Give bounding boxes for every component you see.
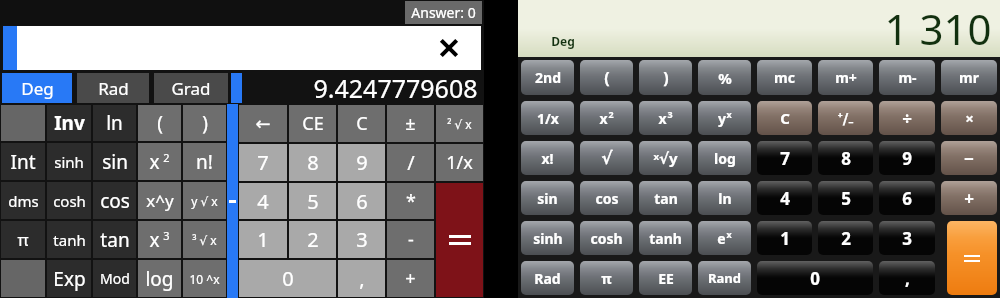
button[interactable]: 10 ^x bbox=[183, 260, 226, 297]
button[interactable]: , bbox=[879, 261, 935, 295]
button[interactable]: ± bbox=[387, 105, 434, 142]
button[interactable]: m- bbox=[879, 60, 935, 95]
button[interactable]: + bbox=[941, 181, 997, 215]
button[interactable]: - bbox=[387, 221, 434, 258]
button[interactable]: , bbox=[338, 260, 385, 297]
button[interactable]: 9 bbox=[879, 141, 935, 175]
button[interactable]: 7 bbox=[239, 144, 287, 181]
button[interactable]: EE bbox=[639, 261, 692, 295]
button[interactable]: log bbox=[698, 141, 751, 175]
button[interactable]: 8 bbox=[818, 141, 873, 175]
button[interactable]: x bbox=[138, 143, 181, 180]
button[interactable]: 9 bbox=[338, 144, 385, 181]
button[interactable]: sin bbox=[521, 181, 574, 215]
button[interactable]: cos bbox=[580, 181, 633, 215]
button[interactable]: Answer: 0 bbox=[411, 3, 476, 22]
button[interactable]: cos bbox=[93, 182, 136, 219]
button[interactable]: m+ bbox=[818, 60, 873, 95]
button[interactable]: ( bbox=[580, 60, 633, 95]
button[interactable]: + bbox=[387, 260, 434, 297]
button[interactable]: 6 bbox=[338, 183, 385, 219]
button[interactable]: log bbox=[138, 260, 181, 297]
button[interactable]: tanh bbox=[47, 221, 91, 258]
button[interactable]: Grad bbox=[154, 73, 228, 103]
button[interactable]: ÷ bbox=[879, 101, 935, 135]
button[interactable]: cosh bbox=[580, 221, 633, 255]
button[interactable]: 4 bbox=[757, 181, 812, 215]
staticText: 6 bbox=[902, 187, 912, 210]
button[interactable]: y √ x bbox=[183, 182, 226, 219]
button[interactable]: 2nd bbox=[521, 60, 574, 95]
button[interactable]: Inv bbox=[47, 105, 91, 141]
button[interactable]: n! bbox=[183, 143, 226, 180]
button[interactable]: Equals bbox=[436, 183, 483, 297]
button[interactable]: 5 bbox=[289, 183, 336, 219]
button[interactable]: − bbox=[941, 141, 997, 175]
button[interactable]: cosh bbox=[47, 182, 91, 219]
button[interactable]: dms bbox=[1, 182, 45, 219]
button[interactable]: 3 bbox=[879, 221, 935, 255]
button[interactable]: % bbox=[698, 60, 751, 95]
button[interactable]: sin bbox=[93, 143, 136, 180]
button[interactable]: x bbox=[580, 101, 633, 135]
button[interactable]: = bbox=[947, 221, 997, 295]
button[interactable]: 3 bbox=[338, 221, 385, 258]
button[interactable]: 1 bbox=[757, 221, 812, 255]
button[interactable]: × bbox=[941, 101, 997, 135]
button[interactable]: C bbox=[757, 101, 812, 135]
button[interactable]: tanh bbox=[639, 221, 692, 255]
button[interactable]: ) bbox=[639, 60, 692, 95]
button[interactable]: Clear input bbox=[433, 32, 465, 64]
button[interactable]: e bbox=[698, 221, 751, 255]
button[interactable]: sinh bbox=[521, 221, 574, 255]
button[interactable]: π bbox=[580, 261, 633, 295]
button[interactable]: Mod bbox=[93, 260, 136, 297]
button[interactable]: Exp bbox=[47, 260, 91, 297]
button[interactable]: 8 bbox=[289, 144, 336, 181]
button[interactable]: 4 bbox=[239, 183, 287, 219]
button[interactable]: ⁺∕₋ bbox=[818, 101, 873, 135]
button[interactable]: ( bbox=[138, 105, 181, 141]
button[interactable]: 0 bbox=[757, 261, 873, 295]
button[interactable]: x bbox=[138, 221, 181, 258]
button[interactable]: x bbox=[639, 101, 692, 135]
button[interactable]: sinh bbox=[47, 143, 91, 180]
button[interactable]: ³ √ x bbox=[183, 221, 226, 258]
button[interactable]: 1/x bbox=[521, 101, 574, 135]
button[interactable]: 2 bbox=[818, 221, 873, 255]
button[interactable]: 6 bbox=[879, 181, 935, 215]
button[interactable]: Deg bbox=[2, 73, 72, 103]
button[interactable]: x! bbox=[521, 141, 574, 175]
button[interactable]: y bbox=[698, 101, 751, 135]
button[interactable]: / bbox=[387, 144, 434, 181]
button[interactable]: mc bbox=[757, 60, 812, 95]
button[interactable]: ) bbox=[183, 105, 226, 141]
button[interactable]: 2 bbox=[289, 221, 336, 258]
button[interactable]: ˣ√y bbox=[639, 141, 692, 175]
button[interactable]: Int bbox=[1, 143, 45, 180]
button[interactable]: tan bbox=[93, 221, 136, 258]
button[interactable]: ² √ x bbox=[436, 105, 483, 142]
button[interactable]: * bbox=[387, 183, 434, 219]
button[interactable]: Rand bbox=[698, 261, 751, 295]
button[interactable]: x^y bbox=[138, 182, 181, 219]
button[interactable]: 0 bbox=[239, 260, 336, 297]
staticText: ³ √ x bbox=[192, 232, 217, 248]
button[interactable]: 7 bbox=[757, 141, 812, 175]
button[interactable]: Rad bbox=[77, 73, 149, 103]
button[interactable]: ← bbox=[239, 105, 287, 142]
button[interactable]: ln bbox=[698, 181, 751, 215]
button[interactable]: C bbox=[338, 105, 385, 142]
button[interactable]: √ bbox=[580, 141, 633, 175]
button[interactable]: π bbox=[1, 221, 45, 258]
button[interactable]: tan bbox=[639, 181, 692, 215]
button[interactable]: mr bbox=[941, 60, 997, 95]
button[interactable]: ln bbox=[93, 105, 136, 141]
button[interactable]: Rad bbox=[521, 261, 574, 295]
button[interactable]: 1 bbox=[239, 221, 287, 258]
button[interactable]: 1/x bbox=[436, 144, 483, 181]
button[interactable]: 5 bbox=[818, 181, 873, 215]
button[interactable]: CE bbox=[289, 105, 336, 142]
